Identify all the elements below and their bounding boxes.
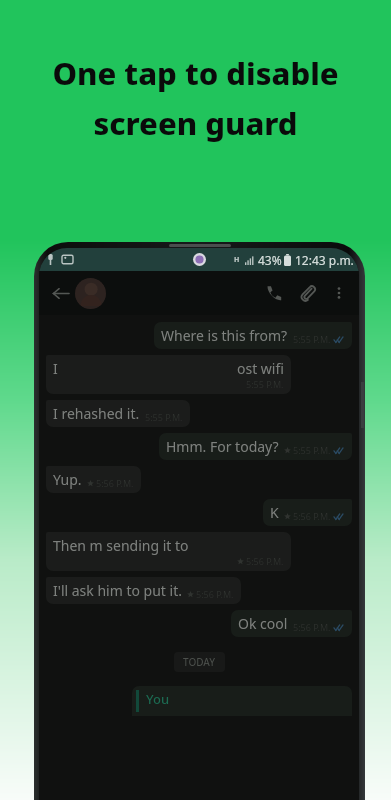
button[interactable]: Then m sending it to [46,532,291,571]
button[interactable]: Where is this from? [154,322,352,349]
staticText: One tap to disable [52,52,339,94]
staticText: K [270,503,279,522]
staticText: 5:56 P.M. [196,588,234,600]
button[interactable]: I'll ask him to put it. [46,577,241,604]
staticText: 5:56 P.M. [96,477,134,489]
button[interactable]: I [46,355,291,394]
staticText: 12:43 p.m. [295,252,354,268]
button[interactable]: Back [45,278,75,308]
button[interactable]: More options [325,279,353,307]
staticText: 5:55 P.M. [293,444,331,456]
button[interactable]: Yup. [46,466,141,493]
staticText: Where is this from? [161,326,288,345]
staticText: screen guard [93,102,298,144]
staticText: I'll ask him to put it. [53,581,182,600]
button[interactable]: Hmm. For today? [159,433,352,460]
staticText: Yup. [53,470,82,489]
staticText: ost wifi [237,359,284,378]
staticText: TODAY [183,655,216,669]
button[interactable]: K [263,499,352,526]
staticText: You [146,690,170,708]
staticText: I [53,359,58,378]
staticText: Hmm. For today? [166,437,279,456]
staticText: 5:55 P.M. [145,411,183,423]
staticText: H [234,255,240,265]
staticText: Ok cool [238,614,288,633]
staticText: 5:56 P.M. [246,555,284,567]
button[interactable]: Attach [291,276,325,310]
staticText: I rehashed it. [53,404,140,423]
button[interactable]: Contact photo [75,278,106,309]
button[interactable]: Call [257,276,291,310]
staticText: 5:55 P.M. [246,378,284,390]
staticText: 5:56 P.M. [293,621,331,633]
staticText: Then m sending it to [53,536,189,555]
staticText: 5:56 P.M. [293,510,331,522]
button[interactable]: I rehashed it. [46,400,190,427]
staticText: 5:55 P.M. [293,333,331,345]
staticText: 43% [258,252,282,268]
button[interactable]: Ok cool [231,610,352,637]
